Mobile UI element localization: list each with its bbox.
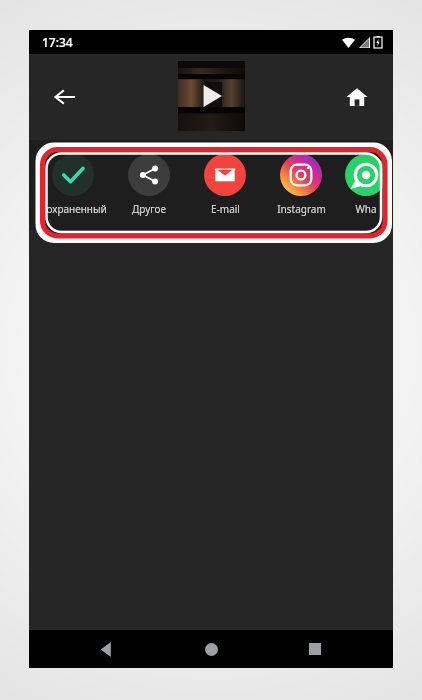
button[interactable]: Instagram	[263, 152, 339, 216]
button[interactable]: Home	[185, 630, 237, 668]
button[interactable]: Back	[43, 75, 87, 119]
button[interactable]: Home	[335, 75, 379, 119]
button[interactable]: Wha	[339, 152, 393, 216]
button[interactable]: Back	[81, 630, 133, 668]
button[interactable]: Другое	[111, 152, 187, 216]
button[interactable]: Recent apps	[289, 630, 341, 668]
button[interactable]: Сохраненный	[35, 152, 111, 216]
staticText: Wha	[355, 202, 377, 216]
staticText: E-mail	[211, 202, 240, 216]
staticText: Другое	[132, 202, 166, 216]
button[interactable]: E-mail	[187, 152, 263, 216]
staticText: Instagram	[277, 202, 326, 216]
staticText: Сохраненный	[40, 202, 107, 216]
staticText: 17:34	[42, 34, 73, 50]
button[interactable]: Video thumbnail	[178, 61, 245, 131]
